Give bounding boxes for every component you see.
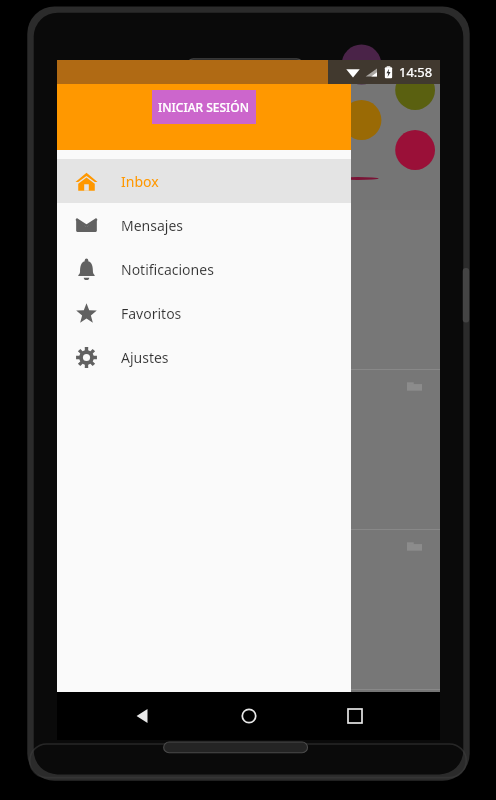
button[interactable]: Home [228, 695, 270, 737]
staticText: Favoritos [121, 304, 182, 323]
button[interactable]: Favoritos [57, 291, 351, 335]
button[interactable]: Inbox [57, 159, 351, 203]
staticText: Inbox [121, 172, 159, 191]
button[interactable]: by [57, 713, 351, 740]
staticText: Notificaciones [121, 260, 214, 279]
staticText: Ajustes [121, 348, 169, 367]
button[interactable]: Mensajes [57, 203, 351, 247]
staticText: 14:58 [399, 63, 433, 81]
button[interactable]: nes y tarifas [57, 210, 440, 370]
staticText: INICIAR SESIÓN [158, 99, 250, 115]
staticText: nes y tarifas [75, 337, 155, 356]
button[interactable]: Ajustes [57, 335, 351, 379]
button[interactable]: Back [122, 695, 164, 737]
button[interactable]: Recent apps [334, 695, 376, 737]
button[interactable]: Notificaciones [57, 247, 351, 291]
staticText: Mensajes [121, 216, 184, 235]
button[interactable]: Eventos [57, 370, 440, 530]
button[interactable]: INICIAR SESIÓN [152, 90, 256, 124]
button[interactable]: omociones [57, 530, 440, 690]
